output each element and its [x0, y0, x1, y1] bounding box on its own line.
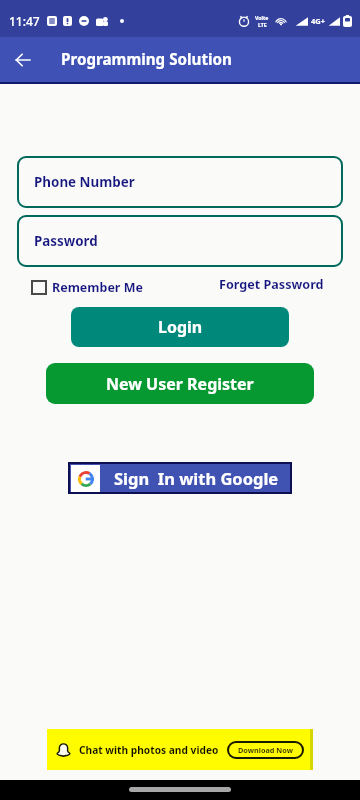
staticText: Programming Solution — [61, 49, 232, 70]
button[interactable]: Sign In with Google — [70, 464, 290, 492]
staticText: LTE — [258, 21, 267, 28]
staticText: Phone Number — [34, 173, 135, 191]
staticText: Sign In with Google — [114, 467, 279, 489]
staticText: Password — [34, 232, 98, 250]
staticText: Remember Me — [52, 279, 143, 296]
button[interactable]: Phone Number — [17, 156, 343, 208]
button[interactable]: Back — [0, 37, 45, 82]
staticText: Login — [158, 316, 203, 338]
button[interactable]: Forget Password — [219, 276, 324, 293]
staticText: 11:47 — [9, 13, 40, 29]
button[interactable]: Remember Me — [31, 279, 143, 296]
staticText: Volte — [255, 14, 269, 21]
staticText: New User Register — [106, 373, 254, 395]
button[interactable]: Password — [17, 215, 343, 267]
staticText: Download Now — [238, 745, 293, 755]
button[interactable]: Chat with photos and video — [47, 729, 313, 770]
staticText: Chat with photos and video — [79, 743, 219, 757]
button[interactable]: Login — [71, 307, 289, 347]
staticText: 4G+ — [311, 16, 326, 26]
button[interactable]: New User Register — [46, 363, 314, 404]
